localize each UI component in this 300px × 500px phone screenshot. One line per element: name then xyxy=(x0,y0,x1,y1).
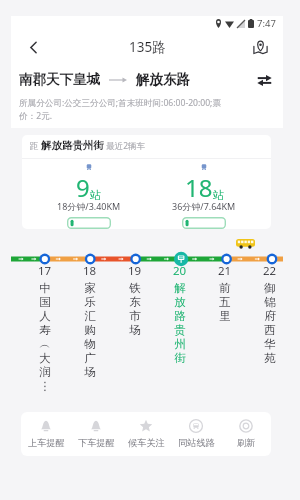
button[interactable]: 刷新 xyxy=(221,412,271,456)
button[interactable]: 17 xyxy=(22,263,67,392)
staticText: 华 xyxy=(264,337,276,351)
staticText: 广 xyxy=(84,351,96,365)
staticText: 南郡天下皇城 xyxy=(19,71,100,88)
staticText: 人 xyxy=(39,309,51,323)
staticText: 19 xyxy=(128,263,142,279)
staticText: 9 xyxy=(76,171,90,204)
staticText: 中 xyxy=(39,281,51,295)
staticText: 东 xyxy=(129,295,141,309)
staticText: 18 xyxy=(83,263,97,279)
staticText: 润 xyxy=(39,365,51,379)
button[interactable]: Reverse direction xyxy=(253,69,275,91)
staticText: 街 xyxy=(174,351,186,365)
staticText: 前 xyxy=(219,281,231,295)
button[interactable]: 21 xyxy=(202,263,247,323)
staticText: 场 xyxy=(129,323,141,337)
staticText: 解放路贵州街 xyxy=(41,139,104,152)
staticText: 20 xyxy=(173,263,187,279)
staticText: 购 xyxy=(84,323,96,337)
staticText: 里 xyxy=(219,309,231,323)
staticText: 最近2辆车 xyxy=(104,140,146,152)
staticText: 西 xyxy=(264,323,276,337)
staticText: 站 xyxy=(213,188,224,202)
staticText: 寿 xyxy=(39,323,51,337)
staticText: 17 xyxy=(38,263,52,279)
staticText: 五 xyxy=(219,295,231,309)
staticText: ︵ xyxy=(39,337,51,351)
staticText: 路 xyxy=(174,309,186,323)
staticText: 解 xyxy=(174,281,186,295)
button[interactable]: 18 xyxy=(67,263,112,379)
staticText: 乐 xyxy=(84,295,96,309)
staticText: 18分钟/3.40KM xyxy=(57,200,121,212)
staticText: 物 xyxy=(84,337,96,351)
staticText: 候车关注 xyxy=(128,437,165,449)
button[interactable]: 19 xyxy=(112,263,157,337)
staticText: 距 xyxy=(30,140,41,152)
staticText: 放 xyxy=(174,295,186,309)
staticText: 场 xyxy=(84,365,96,379)
staticText: 同站线路 xyxy=(178,437,215,449)
staticText: 36分钟/7.64KM xyxy=(172,200,236,212)
staticText: 御 xyxy=(264,281,276,295)
staticText: 7:47 xyxy=(257,17,276,30)
staticText: 贵 xyxy=(174,323,186,337)
button[interactable]: 上车提醒 xyxy=(21,412,71,456)
button[interactable]: Back xyxy=(21,35,45,59)
staticText: 苑 xyxy=(264,351,276,365)
staticText: 锦 xyxy=(264,295,276,309)
staticText: 站 xyxy=(90,188,101,202)
button[interactable]: 下车提醒 xyxy=(71,412,121,456)
staticText: 铁 xyxy=(129,281,141,295)
button[interactable]: 候车关注 xyxy=(121,412,171,456)
staticText: 州 xyxy=(174,337,186,351)
button[interactable]: 22 xyxy=(247,263,292,365)
staticText: 下车提醒 xyxy=(78,437,115,449)
staticText: 府 xyxy=(264,309,276,323)
staticText: 市 xyxy=(129,309,141,323)
staticText: 刷新 xyxy=(237,437,256,449)
staticText: 上车提醒 xyxy=(28,437,65,449)
staticText: 大 xyxy=(39,351,51,365)
staticText: 135路 xyxy=(129,38,166,56)
staticText: 家 xyxy=(84,281,96,295)
staticText: 22 xyxy=(263,263,277,279)
staticText: 国 xyxy=(39,295,51,309)
staticText: ⋮ xyxy=(39,379,51,392)
staticText: 解放东路 xyxy=(136,71,190,88)
button[interactable]: 20 xyxy=(157,263,202,365)
staticText: 18 xyxy=(185,171,213,204)
staticText: 21 xyxy=(218,263,232,279)
button[interactable]: Map xyxy=(249,36,271,58)
staticText: 所属分公司:公交三分公司;首末班时间:06:00-20:00;票价：2元. xyxy=(19,97,238,122)
staticText: 汇 xyxy=(84,309,96,323)
button[interactable]: 同站线路 xyxy=(171,412,221,456)
